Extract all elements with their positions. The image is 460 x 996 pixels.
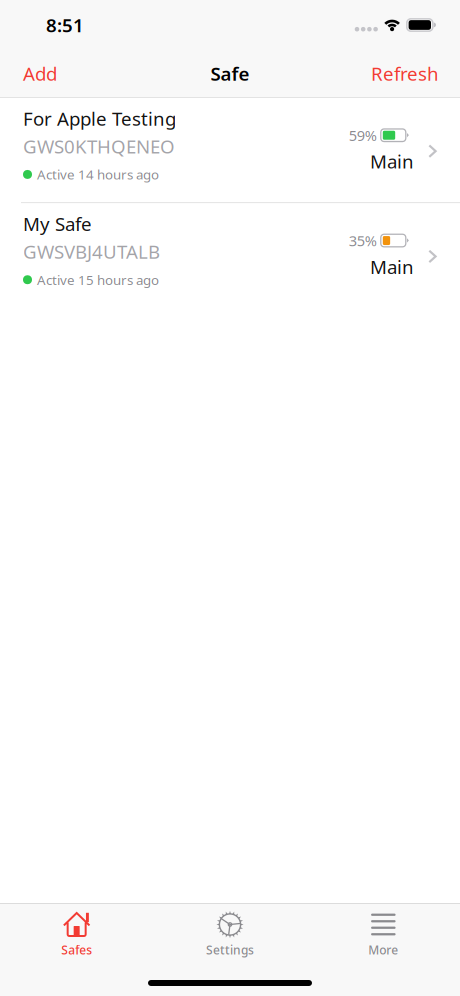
staticText: Main: [370, 149, 414, 174]
staticText: Settings: [206, 942, 254, 958]
staticText: My Safe: [23, 211, 92, 236]
staticText: Active 15 hours ago: [37, 271, 159, 289]
staticText: More: [368, 942, 398, 958]
staticText: Main: [370, 254, 414, 279]
staticText: Add: [23, 61, 57, 86]
staticText: Safes: [61, 942, 92, 958]
button[interactable]: Safes: [0, 904, 153, 958]
staticText: 8:51: [46, 13, 84, 37]
staticText: GWSVBJ4UTALB: [23, 239, 160, 264]
staticText: Active 14 hours ago: [37, 166, 159, 183]
staticText: For Apple Testing: [23, 106, 176, 131]
staticText: GWS0KTHQENEO: [23, 134, 175, 159]
staticText: 35%: [349, 231, 377, 250]
button[interactable]: Add: [14, 54, 66, 93]
button[interactable]: Settings: [153, 904, 307, 958]
button[interactable]: More: [307, 904, 460, 958]
button[interactable]: For Apple Testing: [0, 98, 460, 202]
staticText: Safe: [210, 61, 249, 86]
button[interactable]: Refresh: [362, 54, 446, 93]
staticText: 59%: [349, 125, 377, 145]
button[interactable]: My Safe: [0, 203, 460, 308]
staticText: Refresh: [371, 61, 439, 86]
